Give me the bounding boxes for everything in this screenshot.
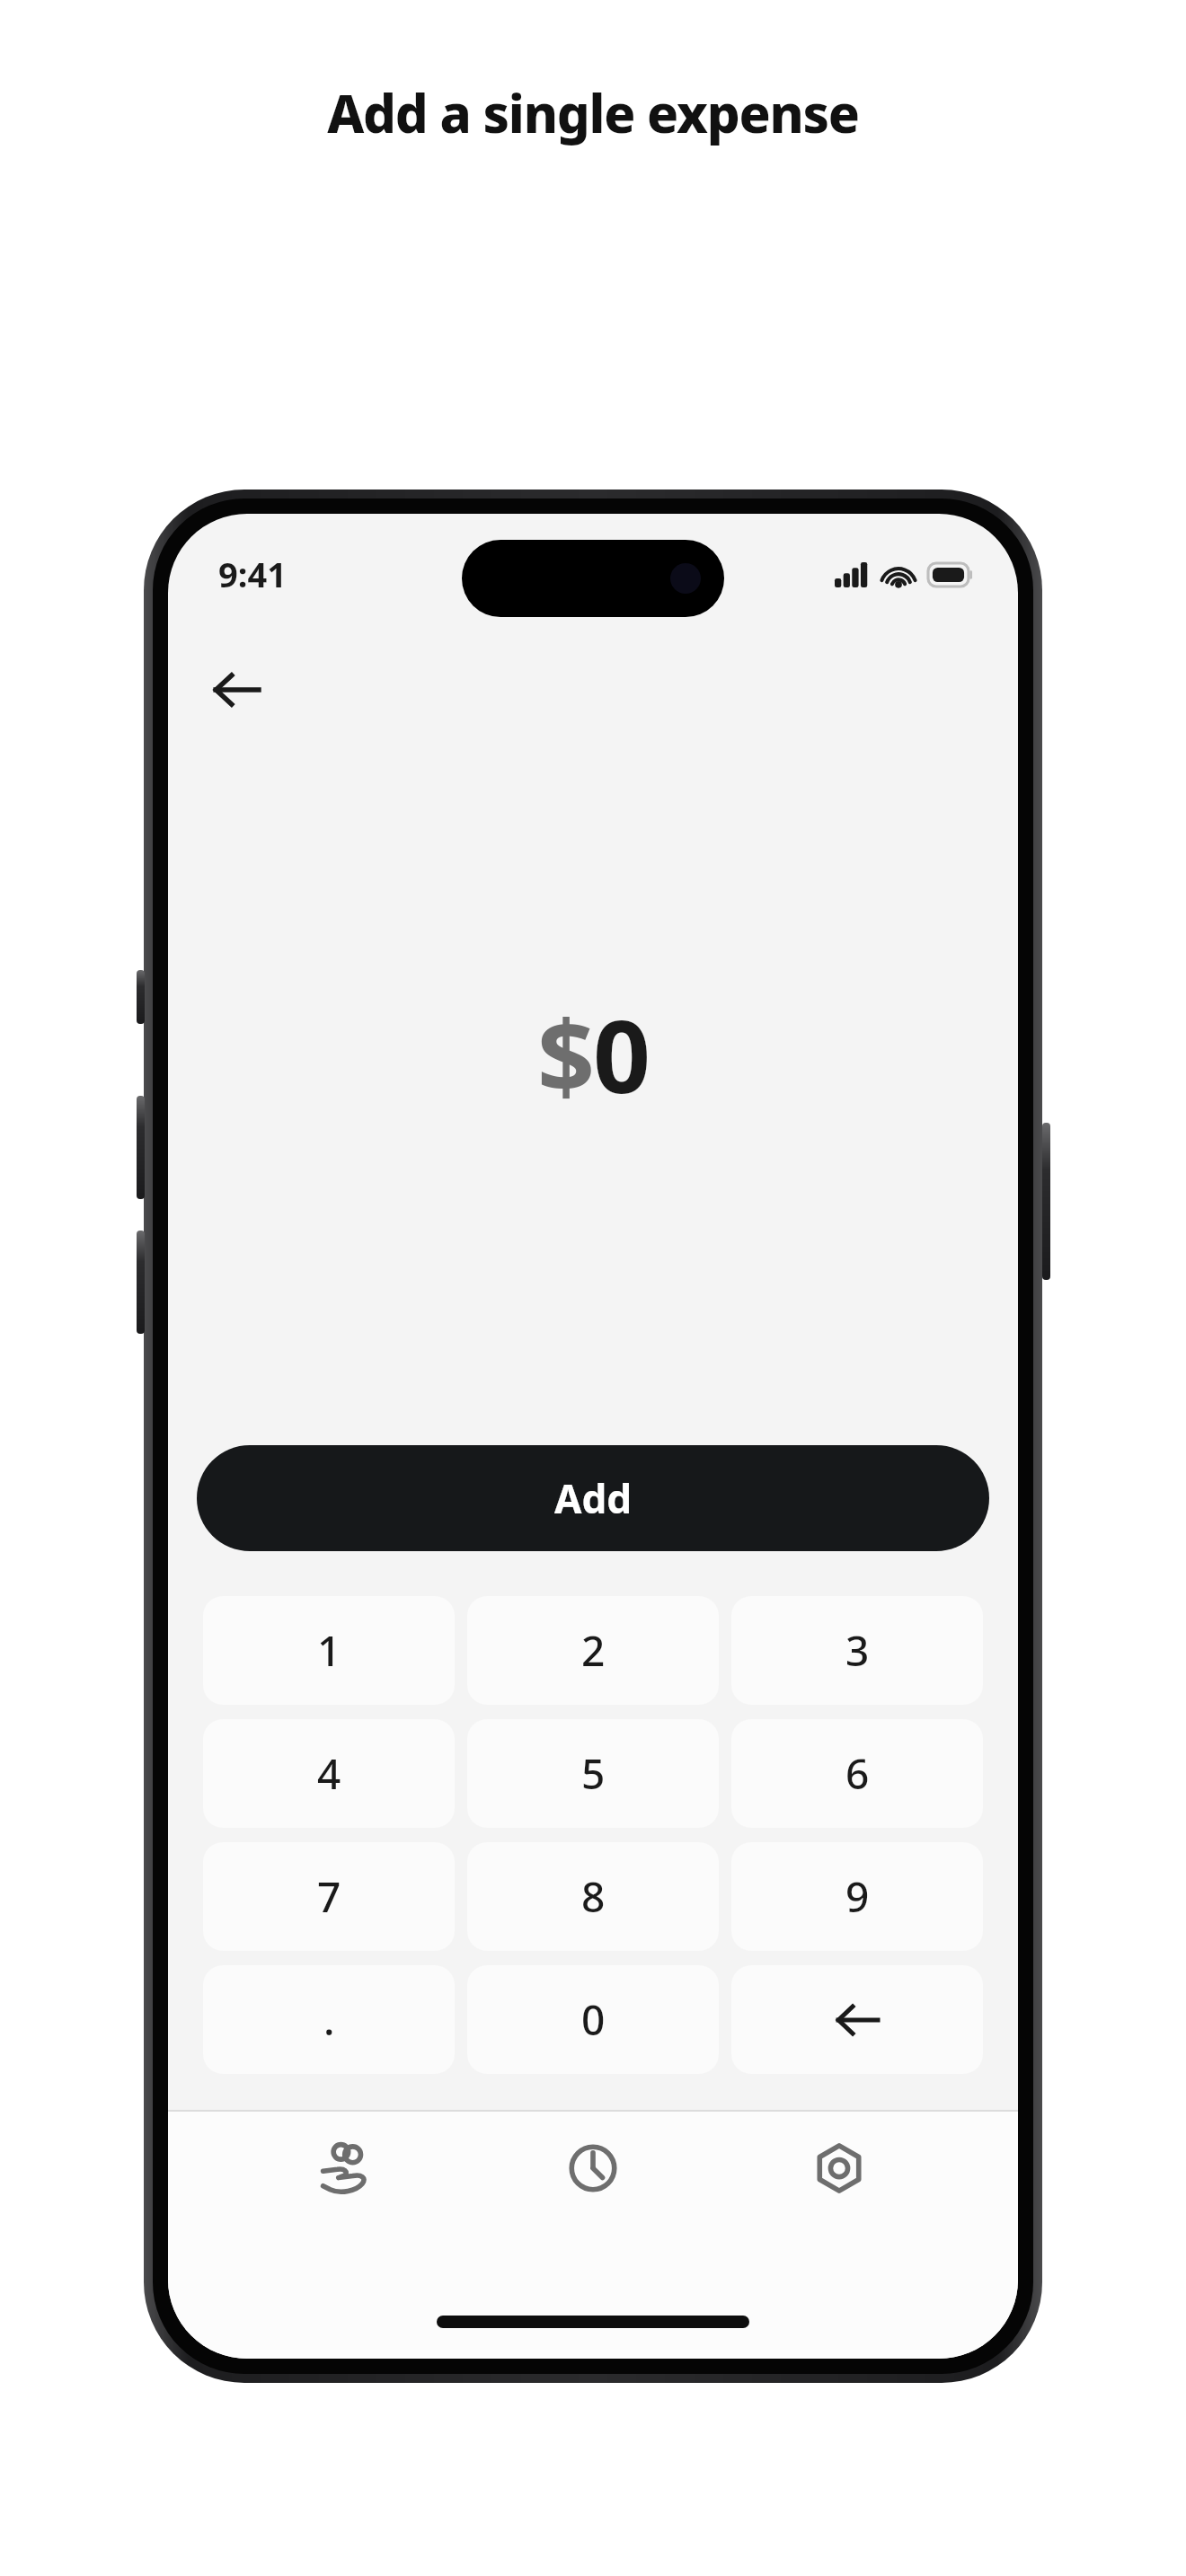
button[interactable]: 9 [731, 1842, 983, 1951]
staticText: 1 [317, 1622, 341, 1679]
staticText: 2 [581, 1622, 606, 1679]
staticText: 3 [845, 1622, 870, 1679]
button[interactable]: 1 [203, 1596, 455, 1705]
button[interactable]: 3 [731, 1596, 983, 1705]
button[interactable]: Settings [772, 2139, 907, 2237]
button[interactable]: . [203, 1965, 455, 2074]
staticText: $0 [537, 985, 650, 1123]
staticText: 4 [317, 1745, 341, 1802]
staticText: Add a single expense [327, 77, 859, 148]
button[interactable]: 8 [467, 1842, 719, 1951]
button[interactable]: Expenses [279, 2139, 414, 2237]
button[interactable]: Add [197, 1445, 989, 1551]
staticText: 0 [581, 1991, 606, 2048]
button[interactable]: Back [191, 645, 281, 735]
staticText: 7 [317, 1868, 341, 1925]
staticText: 9:41 [218, 551, 287, 597]
button[interactable]: 0 [467, 1965, 719, 2074]
staticText: . [323, 1991, 335, 2048]
button[interactable]: 2 [467, 1596, 719, 1705]
button[interactable]: 5 [467, 1719, 719, 1828]
staticText: 8 [581, 1868, 606, 1925]
staticText: 5 [581, 1745, 606, 1802]
button[interactable]: History [526, 2139, 660, 2237]
button[interactable]: 4 [203, 1719, 455, 1828]
staticText: Add [554, 1471, 633, 1525]
button[interactable]: 6 [731, 1719, 983, 1828]
button[interactable]: 7 [203, 1842, 455, 1951]
button[interactable]: Delete [731, 1965, 983, 2074]
staticText: 6 [845, 1745, 870, 1802]
staticText: 9 [845, 1868, 870, 1925]
